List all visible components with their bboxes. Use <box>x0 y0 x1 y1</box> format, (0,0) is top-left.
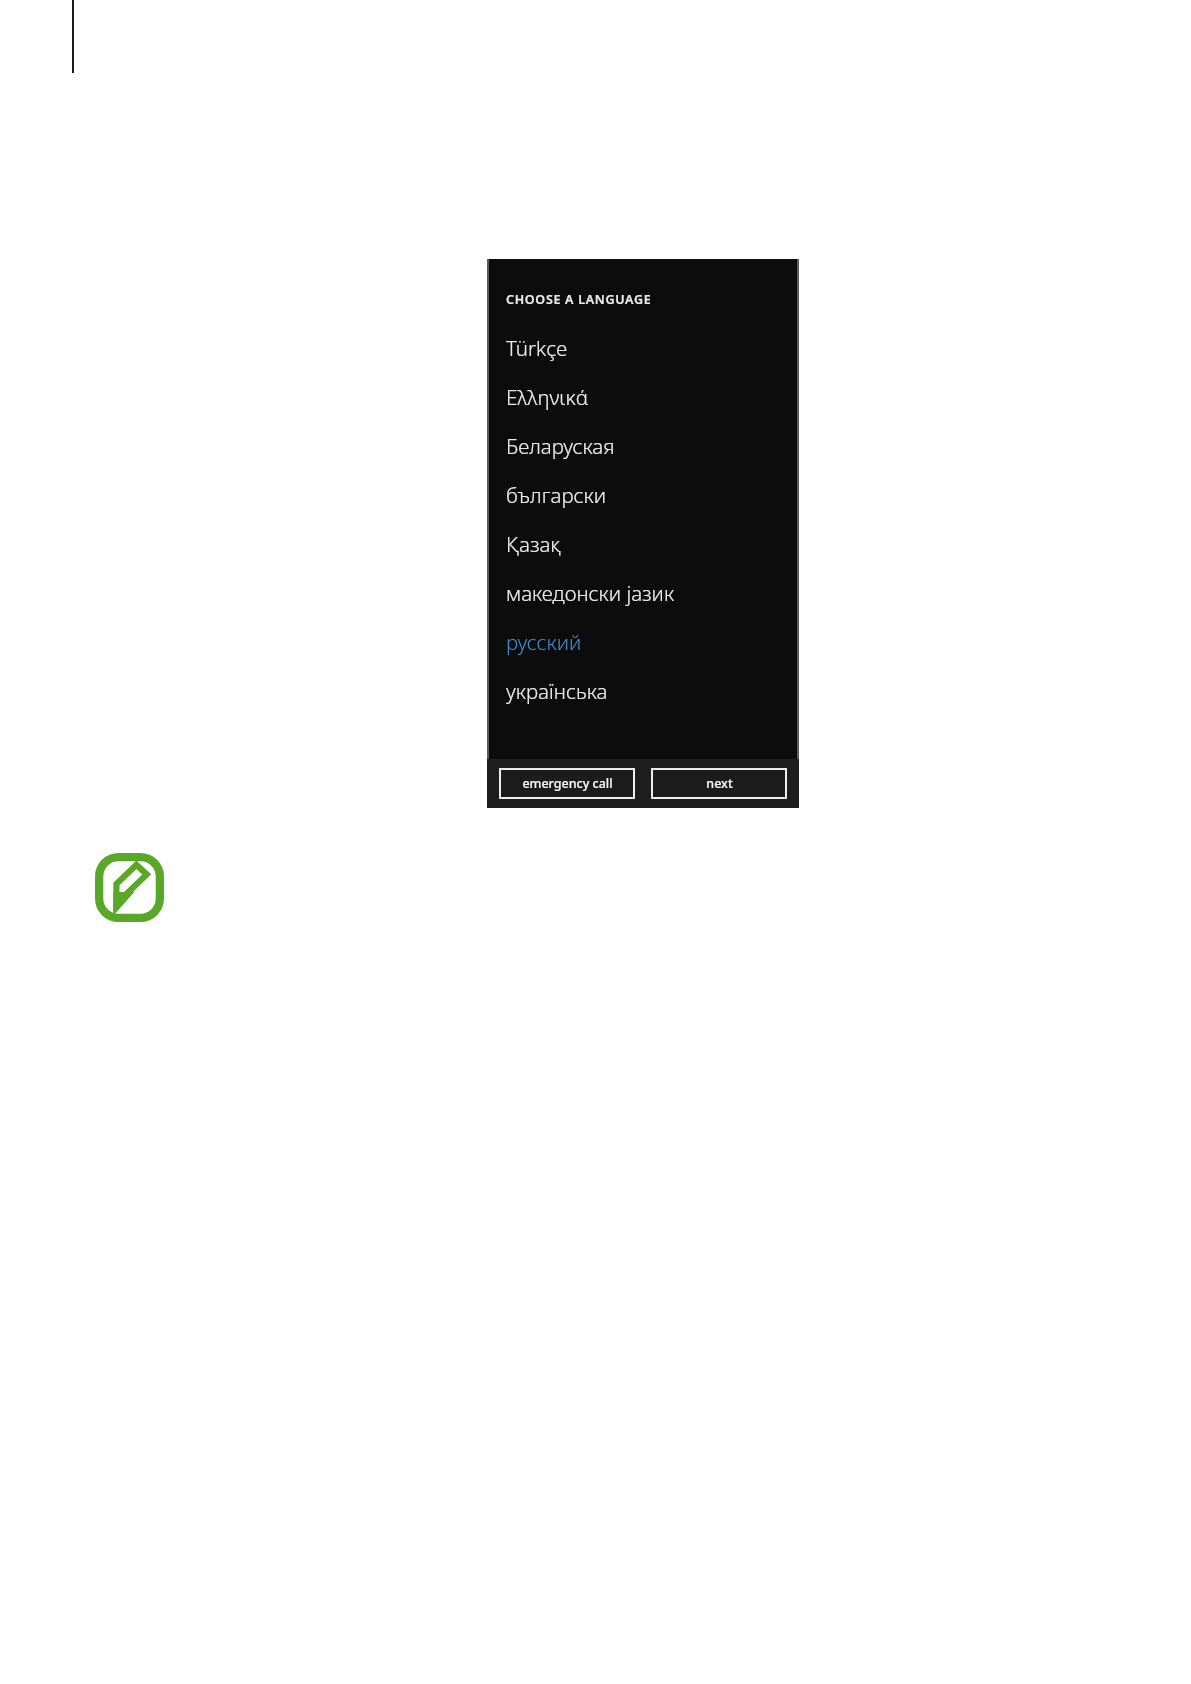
button[interactable]: next <box>651 768 787 799</box>
button[interactable]: Ελληνικά <box>487 372 799 421</box>
staticText: Ελληνικά <box>506 383 589 411</box>
button[interactable]: Türkçe <box>487 323 799 372</box>
staticText: українська <box>506 677 608 705</box>
staticText: Қазақ <box>506 530 561 558</box>
button[interactable]: Беларуская <box>487 421 799 470</box>
staticText: български <box>506 481 607 509</box>
staticText: CHOOSE A LANGUAGE <box>506 291 652 308</box>
staticText: Беларуская <box>506 432 615 460</box>
staticText: Türkçe <box>506 334 568 362</box>
button[interactable]: български <box>487 470 799 519</box>
staticText: next <box>706 775 733 792</box>
staticText: emergency call <box>522 775 613 792</box>
staticText: русский <box>506 628 582 656</box>
other: Note <box>95 853 164 922</box>
staticText: македонски јазик <box>506 579 675 607</box>
button[interactable]: русский <box>487 617 799 666</box>
button[interactable]: македонски јазик <box>487 568 799 617</box>
button[interactable]: Қазақ <box>487 519 799 568</box>
button[interactable]: українська <box>487 666 799 715</box>
button[interactable]: emergency call <box>499 768 635 799</box>
